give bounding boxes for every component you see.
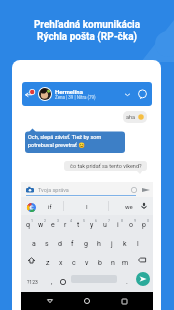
button[interactable]: Shift	[24, 253, 38, 267]
button[interactable]: y	[85, 215, 98, 234]
button[interactable]: e	[46, 215, 59, 234]
button[interactable]: i	[111, 215, 124, 234]
button[interactable]: .	[122, 272, 132, 291]
staticText: f	[71, 240, 74, 248]
button[interactable]: ?123	[23, 272, 41, 291]
staticText: n	[111, 259, 115, 267]
staticText: if	[48, 203, 52, 210]
button[interactable]: a	[27, 234, 40, 253]
button[interactable]: Google	[27, 203, 36, 212]
staticText: x	[59, 259, 63, 267]
staticText: b	[98, 259, 102, 267]
staticText: Tvoja správa	[38, 187, 131, 193]
staticText: m	[122, 259, 129, 267]
staticText: ?123	[27, 279, 38, 285]
button[interactable]: h	[92, 234, 105, 253]
button[interactable]: d	[53, 234, 66, 253]
staticText: w	[38, 221, 44, 229]
button[interactable]: m	[119, 253, 132, 272]
staticText: 2	[44, 219, 46, 223]
staticText: c	[72, 259, 76, 267]
button[interactable]: Emoji keyboard	[58, 272, 68, 291]
button[interactable]: Home	[79, 293, 95, 309]
button[interactable]: t	[72, 215, 85, 234]
button[interactable]: Backspace	[135, 253, 149, 267]
button[interactable]: Profile photo	[39, 88, 51, 100]
button[interactable]: Expand	[124, 91, 131, 98]
staticText: I	[86, 203, 88, 210]
button[interactable]: Back	[22, 82, 152, 106]
button[interactable]: j	[105, 234, 118, 253]
staticText: g	[84, 240, 88, 248]
button[interactable]: c	[67, 253, 80, 272]
staticText: 9	[134, 219, 136, 223]
staticText: Prehľadná komunikácia	[0, 19, 174, 31]
button[interactable]: s	[40, 234, 53, 253]
staticText: Žena | 39 | Nitra (79)	[55, 95, 96, 100]
button[interactable]: u	[98, 215, 111, 234]
button[interactable]: čo tak pridať sa tento víkend?	[64, 161, 147, 173]
button[interactable]: Back	[42, 293, 58, 309]
button[interactable]: x	[54, 253, 67, 272]
button[interactable]: k	[118, 234, 131, 253]
button[interactable]: o	[124, 215, 137, 234]
staticText: we	[125, 203, 133, 210]
staticText: Rýchla pošta (RP-čka)	[0, 31, 174, 43]
staticText: a	[32, 240, 36, 248]
button[interactable]: aha	[123, 111, 147, 123]
staticText: i	[117, 221, 119, 229]
button[interactable]: Send	[142, 186, 150, 194]
button[interactable]: p	[137, 215, 150, 234]
staticText: y	[90, 221, 94, 229]
staticText: v	[85, 259, 89, 267]
button[interactable]: g	[79, 234, 92, 253]
staticText: 0	[147, 219, 149, 223]
staticText: 7	[108, 219, 110, 223]
staticText: l	[137, 240, 139, 248]
staticText: čo tak pridať sa tento víkend?	[70, 163, 142, 169]
button[interactable]: Messages	[137, 89, 148, 100]
staticText: r	[64, 221, 67, 229]
staticText: e	[51, 221, 55, 229]
staticText: 4	[70, 219, 72, 223]
button[interactable]: n	[106, 253, 119, 272]
staticText: ,	[51, 278, 53, 286]
staticText: o	[129, 221, 133, 229]
staticText: 1	[31, 219, 33, 223]
staticText: j	[111, 240, 113, 248]
button[interactable]: Voice input	[140, 202, 148, 210]
button[interactable]: Och, slepá závisť. Tiež by som potrebuva…	[25, 130, 125, 153]
staticText: q	[26, 221, 30, 229]
button[interactable]: v	[80, 253, 93, 272]
staticText: Hermelína	[55, 88, 83, 95]
staticText: Och, slepá závisť. Tiež by som potrebuva…	[28, 134, 102, 149]
staticText: h	[97, 240, 101, 248]
button[interactable]: we	[119, 197, 139, 215]
button[interactable]: r	[59, 215, 72, 234]
button[interactable]: if	[40, 197, 60, 215]
staticText: 8	[121, 219, 123, 223]
button[interactable]: Recent apps	[116, 293, 132, 309]
button[interactable]: Back	[25, 89, 35, 99]
button[interactable]: Camera	[26, 186, 34, 194]
button[interactable]: z	[41, 253, 54, 272]
button[interactable]: Send	[136, 272, 150, 286]
staticText: t	[77, 221, 80, 229]
staticText: 3	[57, 219, 59, 223]
button[interactable]: w	[34, 215, 47, 234]
button[interactable]: I	[77, 197, 97, 215]
button[interactable]: Camera	[21, 182, 153, 197]
button[interactable]: ,	[47, 272, 57, 291]
button[interactable]: q	[21, 215, 34, 234]
button[interactable]: l	[131, 234, 144, 253]
staticText: 5	[83, 219, 85, 223]
button[interactable]: Emoji	[131, 187, 137, 193]
button[interactable]: f	[66, 234, 79, 253]
staticText: u	[103, 221, 107, 229]
staticText: 6	[95, 219, 97, 223]
button[interactable]: b	[93, 253, 106, 272]
staticText: p	[142, 221, 146, 229]
staticText: s	[45, 240, 49, 248]
staticText: aha	[126, 114, 136, 120]
